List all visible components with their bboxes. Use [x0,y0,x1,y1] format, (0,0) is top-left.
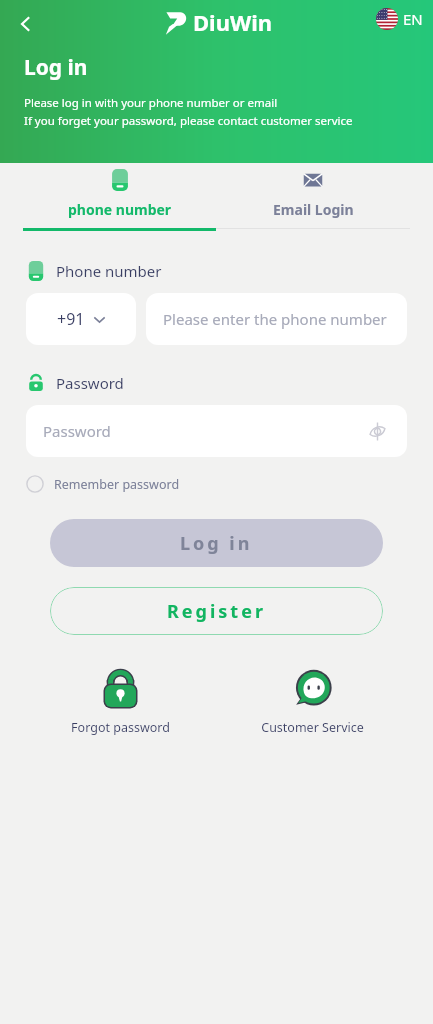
button[interactable]: +91 [26,293,136,345]
button[interactable]: Show password [364,418,390,444]
staticText: Please enter the phone number [163,309,387,329]
button[interactable]: Please enter the phone number [146,293,407,345]
staticText: Phone number [56,261,162,281]
staticText: DiuWin [193,7,273,37]
staticText: EN [403,9,423,29]
button[interactable]: Customer Service [216,667,409,736]
staticText: Log in [24,53,88,82]
staticText: Email Login [273,200,354,219]
button[interactable]: Register [50,587,383,635]
staticText: Password [43,421,111,441]
staticText: phone number [68,200,172,219]
staticText: Customer Service [261,719,364,736]
staticText: Remember password [54,476,180,493]
staticText: Please log in with your phone number or … [24,95,278,111]
staticText: If you forget your password, please cont… [24,113,353,129]
button[interactable]: Remember password [26,475,180,493]
button[interactable]: Back [8,6,44,42]
button[interactable]: phone number [23,169,216,231]
button[interactable]: EN [376,8,423,30]
button[interactable]: Password [26,405,407,457]
button[interactable]: Email Login [216,169,410,229]
staticText: +91 [57,308,85,330]
staticText: Password [56,373,124,393]
staticText: Log in [180,531,253,556]
button[interactable]: Log in [50,519,383,567]
staticText: Register [167,599,266,624]
staticText: Forgot password [71,719,170,736]
button[interactable]: Forgot password [24,667,216,736]
